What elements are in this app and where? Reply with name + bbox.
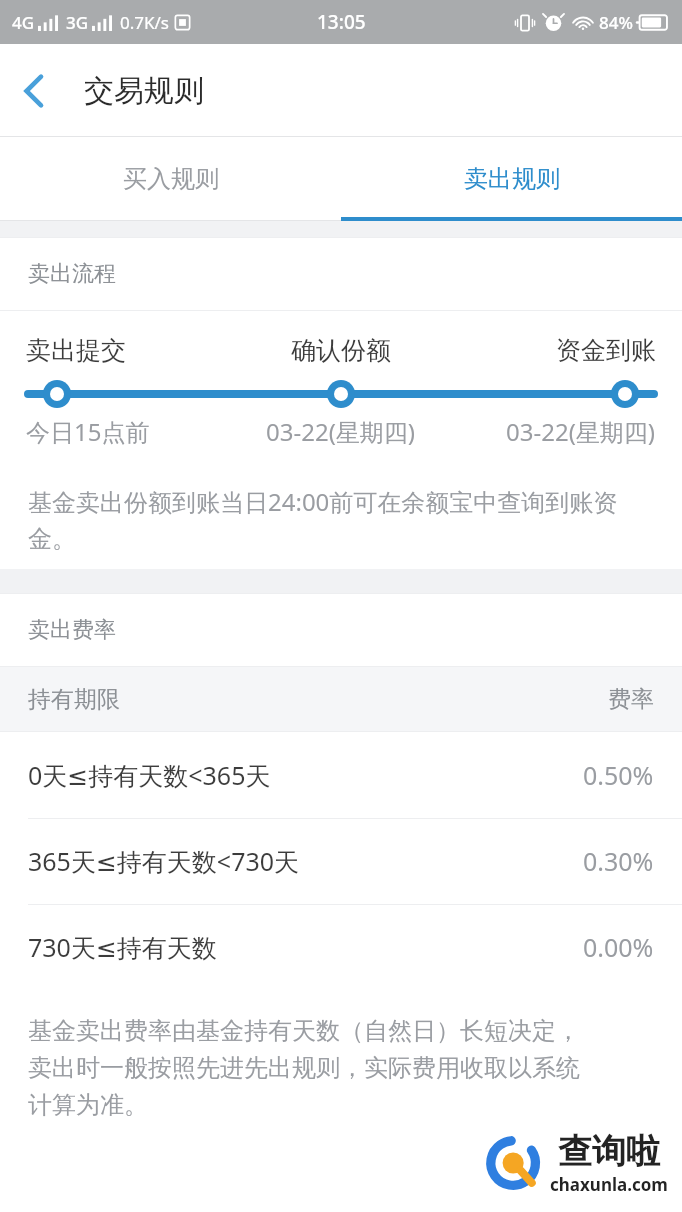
staticText: 基金卖出份额到账当日24:00前可在余额宝中查询到账资 (28, 485, 618, 518)
staticText: 4G (12, 11, 35, 34)
staticText: 买入规则 (123, 164, 219, 194)
staticText: 03-22(星期四) (266, 415, 416, 448)
staticText: 365天≤持有天数<730天 (28, 844, 300, 878)
staticText: 今日15点前 (26, 415, 150, 448)
staticText: 84% (599, 11, 633, 34)
staticText: 卖出规则 (464, 164, 560, 194)
staticText: 0.30% (583, 844, 654, 878)
staticText: 卖出费率 (28, 616, 116, 644)
staticText: 卖出提交 (26, 335, 126, 366)
button[interactable]: 返回 (0, 44, 68, 137)
button[interactable]: 730天≤持有天数 (0, 904, 682, 990)
staticText: 0.7K/s (120, 11, 169, 34)
staticText: 730天≤持有天数 (28, 930, 217, 964)
staticText: 查询啦 (558, 1130, 660, 1173)
staticText: 计算为准。 (28, 1090, 148, 1120)
button[interactable]: 365天≤持有天数<730天 (0, 818, 682, 904)
staticText: 卖出流程 (28, 260, 116, 288)
staticText: 3G (66, 11, 89, 34)
staticText: 03-22(星期四) (506, 415, 656, 448)
staticText: 持有期限 (28, 685, 120, 714)
staticText: 金。 (28, 524, 76, 554)
staticText: chaxunla.com (550, 1173, 668, 1196)
staticText: 0.50% (583, 758, 654, 792)
staticText: 卖出时一般按照先进先出规则，实际费用收取以系统 (28, 1053, 580, 1083)
staticText: 0.00% (583, 930, 654, 964)
staticText: 确认份额 (291, 335, 391, 366)
staticText: 资金到账 (556, 335, 656, 366)
button[interactable]: 0天≤持有天数<365天 (0, 732, 682, 818)
staticText: 13:05 (317, 9, 366, 35)
staticText: 基金卖出费率由基金持有天数（自然日）长短决定， (28, 1016, 580, 1046)
button[interactable]: 卖出规则 (341, 137, 682, 221)
staticText: 0天≤持有天数<365天 (28, 758, 271, 792)
button[interactable]: 买入规则 (0, 137, 341, 221)
staticText: 交易规则 (84, 72, 204, 110)
staticText: 费率 (608, 685, 654, 714)
